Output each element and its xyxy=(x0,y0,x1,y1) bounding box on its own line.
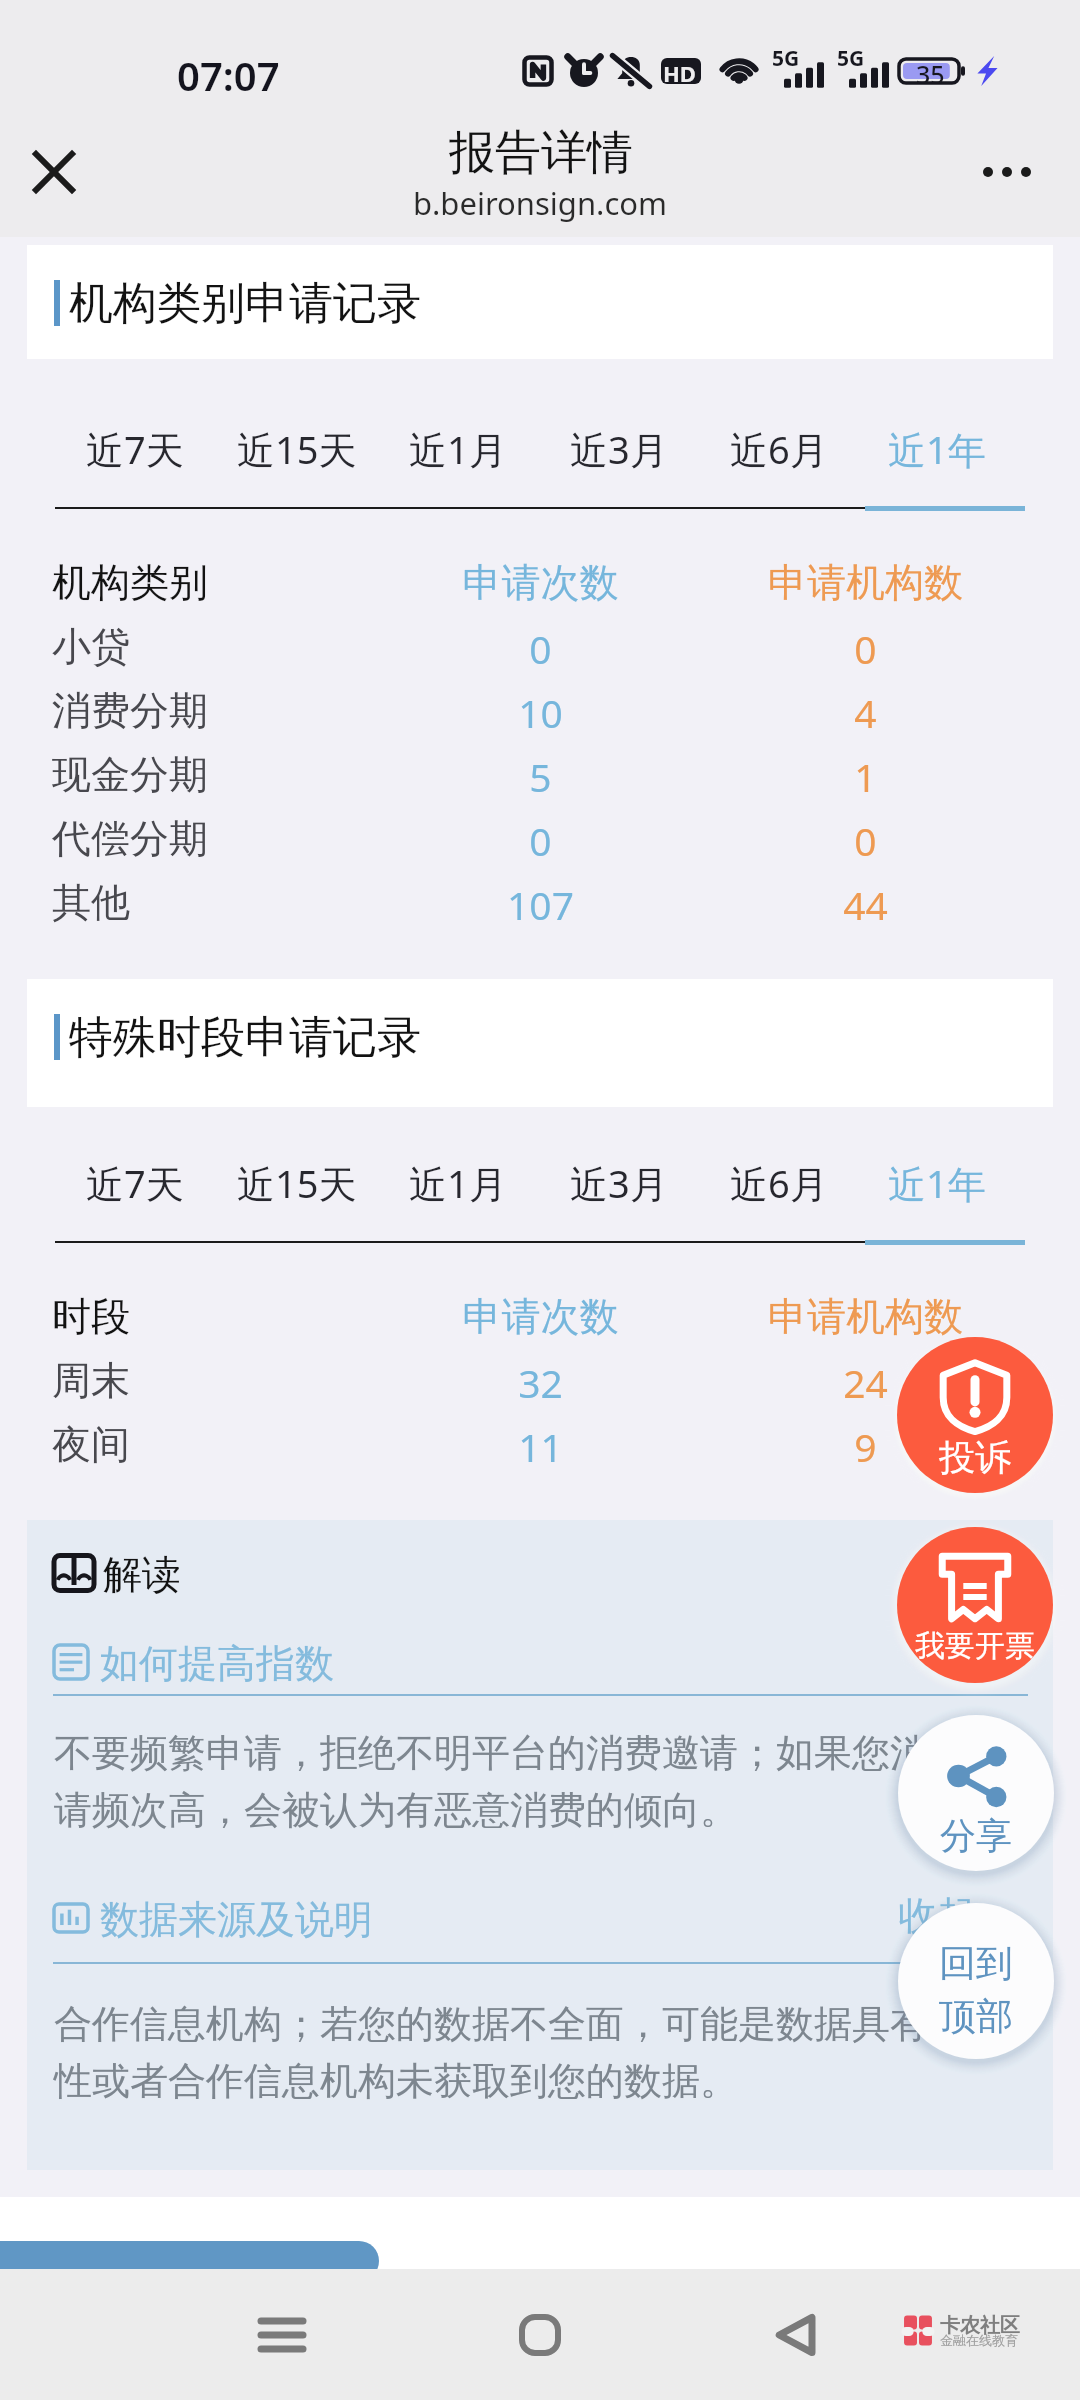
staticText: 35 xyxy=(916,57,945,91)
staticText: 0 xyxy=(378,814,703,867)
staticText: 9 xyxy=(703,1420,1028,1473)
staticText: 07:07 xyxy=(177,48,280,102)
staticText: 近15天 xyxy=(237,1157,357,1209)
button[interactable]: 悬浮按钮 xyxy=(0,2241,379,2281)
button[interactable]: 近1月 xyxy=(377,1148,539,1218)
button[interactable]: 我要开票 xyxy=(897,1527,1053,1683)
staticText: 顶部 xyxy=(939,1993,1013,2040)
staticText: 44 xyxy=(703,878,1028,931)
button[interactable]: Close xyxy=(18,136,90,208)
staticText: 107 xyxy=(378,878,703,931)
staticText: 近3月 xyxy=(570,423,668,475)
staticText: 近1年 xyxy=(888,1157,986,1209)
button[interactable]: 近3月 xyxy=(538,414,700,484)
button[interactable]: 近6月 xyxy=(698,414,860,484)
staticText: 近3月 xyxy=(570,1157,668,1209)
staticText: 0 xyxy=(703,814,1028,867)
button[interactable]: Back xyxy=(750,2289,842,2381)
staticText: 消费分期 xyxy=(52,686,378,735)
button[interactable]: 收起 xyxy=(898,1891,976,1937)
staticText: 时段 xyxy=(52,1292,378,1341)
staticText: 近6月 xyxy=(730,423,828,475)
staticText: 合作信息机构；若您的数据不全面，可能是数据具有滞后性或者合作信息机构未获取到您的… xyxy=(54,2000,1012,2106)
staticText: 11 xyxy=(378,1420,703,1473)
button[interactable]: 数据来源及说明 xyxy=(52,1895,452,1941)
staticText: 5G xyxy=(837,44,865,73)
staticText: 0 xyxy=(378,622,703,675)
staticText: 近7天 xyxy=(86,1157,184,1209)
staticText: 特殊时段申请记录 xyxy=(69,1010,421,1065)
staticText: 0 xyxy=(703,622,1028,675)
staticText: 近1年 xyxy=(888,423,986,475)
staticText: 申请机构数 xyxy=(703,1292,1028,1341)
button[interactable]: 近1年 xyxy=(856,1148,1018,1218)
button[interactable]: 近15天 xyxy=(216,414,378,484)
staticText: 卡农社区 xyxy=(940,2313,1020,2338)
staticText: 申请次数 xyxy=(378,558,703,607)
button[interactable]: 近6月 xyxy=(698,1148,860,1218)
button[interactable]: 近15天 xyxy=(216,1148,378,1218)
button[interactable]: 近3月 xyxy=(538,1148,700,1218)
button[interactable]: 回到顶部 xyxy=(898,1903,1054,2059)
staticText: 5G xyxy=(772,44,800,73)
staticText: 如何提高指数 xyxy=(100,1639,334,1688)
staticText: 代偿分期 xyxy=(52,814,378,863)
button[interactable]: 近1月 xyxy=(377,414,539,484)
button[interactable]: Recent apps xyxy=(236,2289,328,2381)
staticText: 4 xyxy=(703,686,1028,739)
staticText: 机构类别 xyxy=(52,558,378,607)
button[interactable]: 分享 xyxy=(898,1715,1054,1871)
staticText: 我要开票 xyxy=(915,1627,1035,1665)
staticText: 5 xyxy=(378,750,703,803)
staticText: 现金分期 xyxy=(52,750,378,799)
button[interactable]: 如何提高指数 xyxy=(52,1637,552,1689)
staticText: HD xyxy=(663,58,696,88)
button[interactable]: Home xyxy=(494,2289,586,2381)
staticText: 金融在线教育 xyxy=(940,2332,1018,2348)
staticText: 分享 xyxy=(940,1813,1012,1858)
staticText: 近1月 xyxy=(409,423,507,475)
staticText: 近7天 xyxy=(86,423,184,475)
staticText: 不要频繁申请，拒绝不明平台的消费邀请；如果您消费申请频次高，会被认为有恶意消费的… xyxy=(54,1729,1012,1835)
button[interactable]: 近1年 xyxy=(856,414,1018,484)
staticText: 申请机构数 xyxy=(703,558,1028,607)
staticText: 10 xyxy=(378,686,703,739)
staticText: 收起 xyxy=(898,1891,976,1937)
staticText: 投诉 xyxy=(939,1435,1011,1480)
staticText: 其他 xyxy=(52,878,378,927)
button[interactable]: 近7天 xyxy=(54,414,216,484)
staticText: 机构类别申请记录 xyxy=(69,276,421,331)
staticText: b.beironsign.com xyxy=(413,182,668,224)
staticText: 回到 xyxy=(939,1940,1013,1987)
staticText: 小贷 xyxy=(52,622,378,671)
staticText: 近15天 xyxy=(237,423,357,475)
staticText: 近1月 xyxy=(409,1157,507,1209)
staticText: 夜间 xyxy=(52,1420,378,1469)
staticText: 数据来源及说明 xyxy=(100,1895,373,1941)
staticText: 申请次数 xyxy=(378,1292,703,1341)
staticText: 周末 xyxy=(52,1356,378,1405)
staticText: 32 xyxy=(378,1356,703,1409)
button[interactable]: 投诉 xyxy=(897,1337,1053,1493)
staticText: 1 xyxy=(703,750,1028,803)
button[interactable]: More options xyxy=(962,138,1052,206)
staticText: 近6月 xyxy=(730,1157,828,1209)
staticText: 24 xyxy=(703,1356,1028,1409)
staticText: 报告详情 xyxy=(449,124,633,182)
button[interactable]: 近7天 xyxy=(54,1148,216,1218)
staticText: 解读 xyxy=(103,1550,181,1599)
